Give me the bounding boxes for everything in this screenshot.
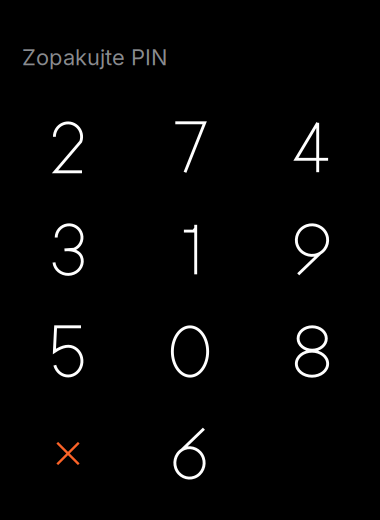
button[interactable]: 3 [7,198,129,300]
staticText: Zopakujte PIN [22,44,167,71]
button[interactable]: 1 [129,198,251,300]
button[interactable]: 8 [251,300,373,402]
button[interactable]: 9 [251,198,373,300]
button[interactable]: 0 [129,300,251,402]
button[interactable]: 4 [251,96,373,198]
button[interactable]: 7 [129,96,251,198]
button[interactable]: 2 [7,96,129,198]
button[interactable]: 5 [7,300,129,402]
button[interactable]: 6 [129,402,251,504]
button[interactable]: Delete [7,402,129,504]
